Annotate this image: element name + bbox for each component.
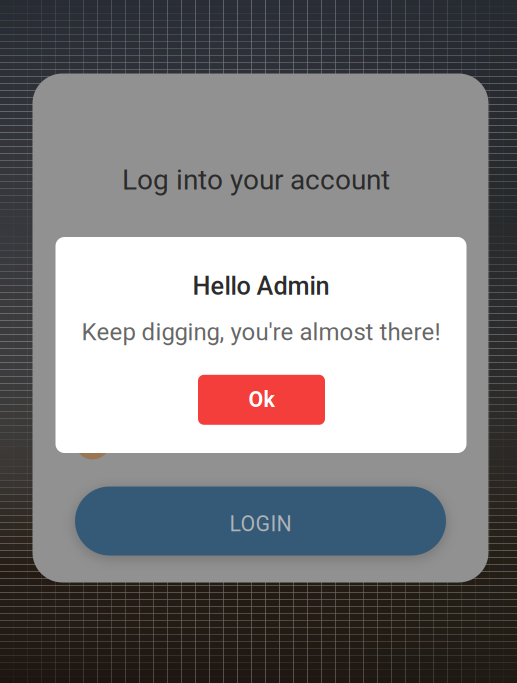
button[interactable]: LOGIN: [75, 486, 446, 555]
staticText: Hello Admin: [192, 271, 329, 301]
staticText: Log into your account: [122, 164, 390, 196]
staticText: Ok: [248, 387, 274, 412]
button[interactable]: Ok: [198, 375, 325, 425]
staticText: LOGIN: [229, 511, 291, 536]
staticText: Keep digging, you're almost there!: [81, 318, 440, 346]
